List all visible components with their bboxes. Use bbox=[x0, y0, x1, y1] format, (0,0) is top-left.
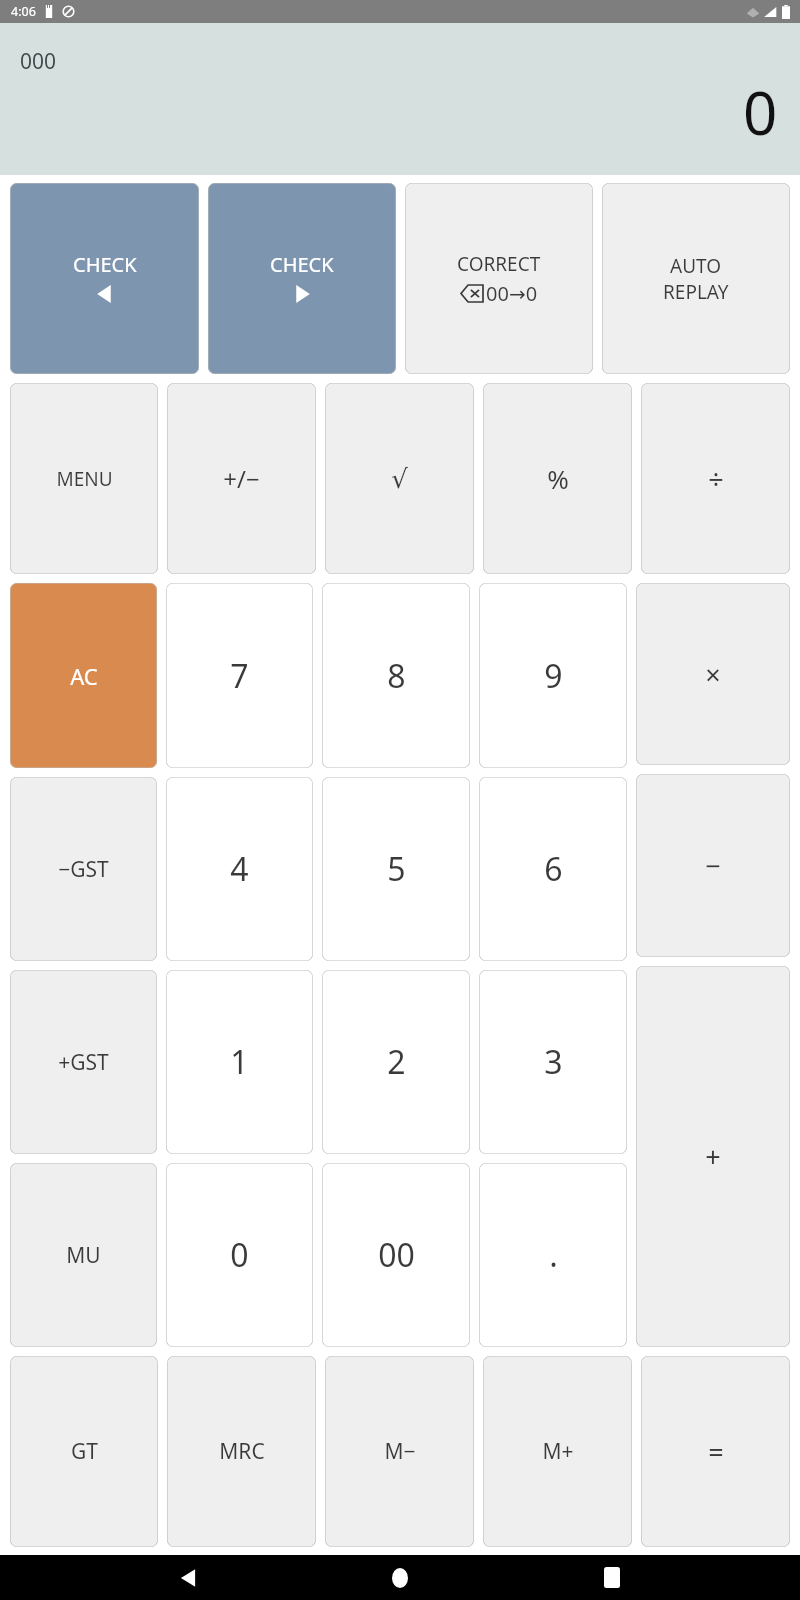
button[interactable]: 00 bbox=[322, 1163, 470, 1347]
staticText: 9 bbox=[544, 654, 563, 698]
button[interactable]: ÷ bbox=[641, 383, 790, 574]
button[interactable]: MENU bbox=[10, 383, 158, 574]
button[interactable]: Check back bbox=[10, 183, 199, 374]
staticText: −GST bbox=[58, 855, 109, 884]
button[interactable]: 9 bbox=[479, 583, 627, 768]
staticText: 3 bbox=[544, 1040, 563, 1084]
staticText: × bbox=[705, 656, 721, 693]
staticText: CORRECT bbox=[457, 251, 541, 277]
button[interactable]: √ bbox=[325, 383, 474, 574]
button[interactable]: Home bbox=[376, 1555, 424, 1600]
button[interactable]: Back bbox=[164, 1555, 212, 1600]
button[interactable]: × bbox=[636, 583, 790, 765]
staticText: 8 bbox=[387, 654, 406, 698]
staticText: MRC bbox=[219, 1437, 265, 1466]
staticText: CHECK bbox=[270, 251, 334, 278]
button[interactable]: . bbox=[479, 1163, 627, 1347]
staticText: MU bbox=[66, 1241, 101, 1270]
staticText: 000 bbox=[20, 47, 57, 76]
button[interactable]: 6 bbox=[479, 777, 627, 961]
staticText: 7 bbox=[230, 654, 249, 698]
button[interactable]: Check forward bbox=[208, 183, 396, 374]
button[interactable]: 8 bbox=[322, 583, 470, 768]
button[interactable]: MRC bbox=[167, 1356, 316, 1547]
staticText: 1 bbox=[230, 1040, 249, 1084]
staticText: +/− bbox=[223, 462, 260, 495]
staticText: 2 bbox=[387, 1040, 406, 1084]
button[interactable]: 5 bbox=[322, 777, 470, 961]
staticText: . bbox=[549, 1233, 558, 1277]
staticText: M+ bbox=[542, 1437, 574, 1466]
button[interactable]: AUTO REPLAY bbox=[602, 183, 790, 374]
button[interactable]: GT bbox=[10, 1356, 158, 1547]
staticText: 4:06 bbox=[11, 3, 36, 20]
button[interactable]: = bbox=[641, 1356, 790, 1547]
staticText: 0 bbox=[743, 71, 778, 153]
button[interactable]: AC bbox=[10, 583, 157, 768]
button[interactable]: +GST bbox=[10, 970, 157, 1154]
staticText: AUTO bbox=[670, 253, 722, 279]
button[interactable]: − bbox=[636, 774, 790, 957]
staticText: √ bbox=[391, 464, 408, 494]
staticText: % bbox=[547, 461, 569, 496]
staticText: + bbox=[705, 1138, 721, 1175]
staticText: MENU bbox=[56, 466, 113, 492]
button[interactable]: 0 bbox=[166, 1163, 313, 1347]
staticText: 4 bbox=[230, 847, 249, 891]
button[interactable]: Correct bbox=[405, 183, 593, 374]
staticText: 00 bbox=[378, 1233, 415, 1277]
button[interactable]: Recents bbox=[588, 1555, 636, 1600]
button[interactable]: +/− bbox=[167, 383, 316, 574]
button[interactable]: + bbox=[636, 966, 790, 1347]
staticText: 0 bbox=[230, 1233, 249, 1277]
staticText: 5 bbox=[387, 847, 406, 891]
staticText: AC bbox=[70, 661, 98, 691]
button[interactable]: M+ bbox=[483, 1356, 632, 1547]
button[interactable]: M− bbox=[325, 1356, 474, 1547]
staticText: CHECK bbox=[73, 251, 137, 278]
button[interactable]: −GST bbox=[10, 777, 157, 961]
button[interactable]: 1 bbox=[166, 970, 313, 1154]
staticText: 6 bbox=[544, 847, 563, 891]
staticText: +GST bbox=[58, 1048, 109, 1077]
staticText: M− bbox=[384, 1437, 416, 1466]
button[interactable]: MU bbox=[10, 1163, 157, 1347]
staticText: REPLAY bbox=[663, 279, 729, 305]
button[interactable]: % bbox=[483, 383, 632, 574]
staticText: 00→0 bbox=[486, 280, 538, 307]
button[interactable]: 7 bbox=[166, 583, 313, 768]
button[interactable]: 2 bbox=[322, 970, 470, 1154]
staticText: GT bbox=[71, 1437, 98, 1466]
button[interactable]: 3 bbox=[479, 970, 627, 1154]
button[interactable]: 4 bbox=[166, 777, 313, 961]
staticText: = bbox=[708, 1433, 724, 1470]
staticText: ÷ bbox=[708, 460, 724, 497]
staticText: − bbox=[705, 847, 721, 884]
